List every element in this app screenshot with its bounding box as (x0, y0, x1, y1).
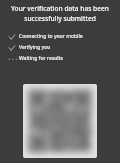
button[interactable]: Waiting for results (0, 53, 120, 64)
button[interactable]: Verifying you (0, 42, 120, 53)
staticText: Connecting to your mobile (19, 33, 83, 40)
staticText: Your verification data has been successf… (8, 4, 112, 23)
staticText: Waiting for results (19, 55, 64, 62)
button[interactable]: Connecting to your mobile (0, 31, 120, 42)
staticText: Verifying you (19, 44, 51, 51)
